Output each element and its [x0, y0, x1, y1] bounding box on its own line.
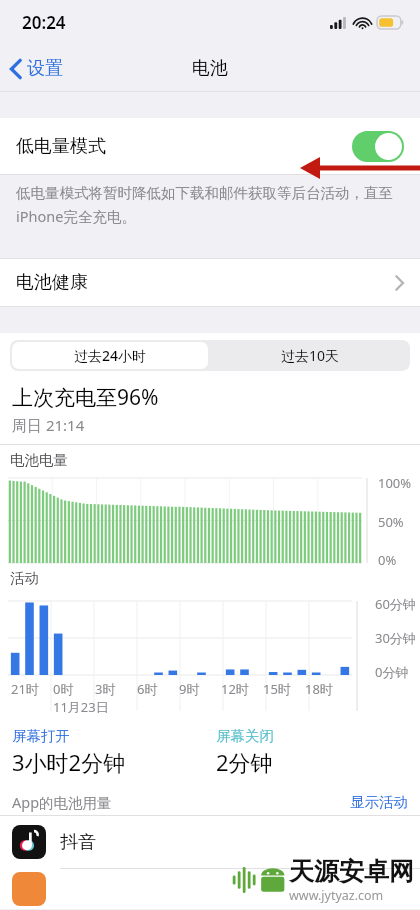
staticText: 过去24小时 — [74, 346, 147, 365]
staticText: 0分钟 — [375, 663, 409, 681]
button[interactable]: 电池健康 — [0, 259, 420, 306]
staticText: 11月23日 — [53, 698, 109, 716]
staticText: www.jytyaz.com — [289, 887, 384, 904]
staticText: 3时 — [95, 680, 116, 698]
staticText: 屏幕打开 — [12, 727, 70, 745]
staticText: 上次充电至96% — [12, 383, 159, 412]
staticText: 电池健康 — [16, 271, 88, 294]
staticText: 6时 — [137, 680, 158, 698]
staticText: 9时 — [179, 680, 200, 698]
staticText: 0% — [378, 551, 397, 569]
staticText: 3小时2分钟 — [12, 747, 126, 777]
staticText: 抖音 — [60, 831, 96, 854]
staticText: 30分钟 — [375, 629, 416, 647]
staticText: 15时 — [263, 680, 291, 698]
staticText: 周日 21:14 — [12, 415, 85, 435]
button[interactable]: 过去10天 — [210, 340, 410, 371]
staticText: 12时 — [221, 680, 249, 698]
staticText: 2分钟 — [216, 747, 273, 777]
staticText: 100% — [378, 474, 412, 492]
staticText: 低电量模式将暂时降低如下载和邮件获取等后台活动，直至 — [16, 184, 393, 202]
staticText: 60分钟 — [375, 595, 416, 613]
staticText: 0时 — [53, 680, 74, 698]
staticText: App的电池用量 — [12, 792, 112, 812]
staticText: 电池电量 — [10, 451, 68, 469]
staticText: 设置 — [27, 57, 63, 80]
staticText: 20:24 — [22, 11, 66, 34]
button[interactable]: 低电量模式 — [0, 118, 420, 174]
staticText: 电池 — [192, 57, 228, 80]
staticText: 过去10天 — [281, 346, 340, 365]
button[interactable]: 设置 — [0, 51, 73, 86]
staticText: 50% — [378, 513, 404, 531]
staticText: 天源安卓网 — [289, 856, 414, 887]
button[interactable]: 抖音 — [0, 816, 420, 868]
button[interactable] — [0, 869, 420, 909]
button[interactable]: 低电量模式开关 — [352, 131, 404, 162]
staticText: iPhone完全充电。 — [16, 206, 136, 226]
staticText: 活动 — [10, 569, 39, 587]
button[interactable]: 显示活动 — [350, 793, 408, 811]
button[interactable]: 过去24小时 — [12, 342, 208, 369]
staticText: 21时 — [11, 680, 39, 698]
staticText: 18时 — [305, 680, 333, 698]
staticText: 低电量模式 — [16, 135, 106, 158]
staticText: 屏幕关闭 — [216, 727, 274, 745]
staticText: 显示活动 — [350, 793, 408, 811]
